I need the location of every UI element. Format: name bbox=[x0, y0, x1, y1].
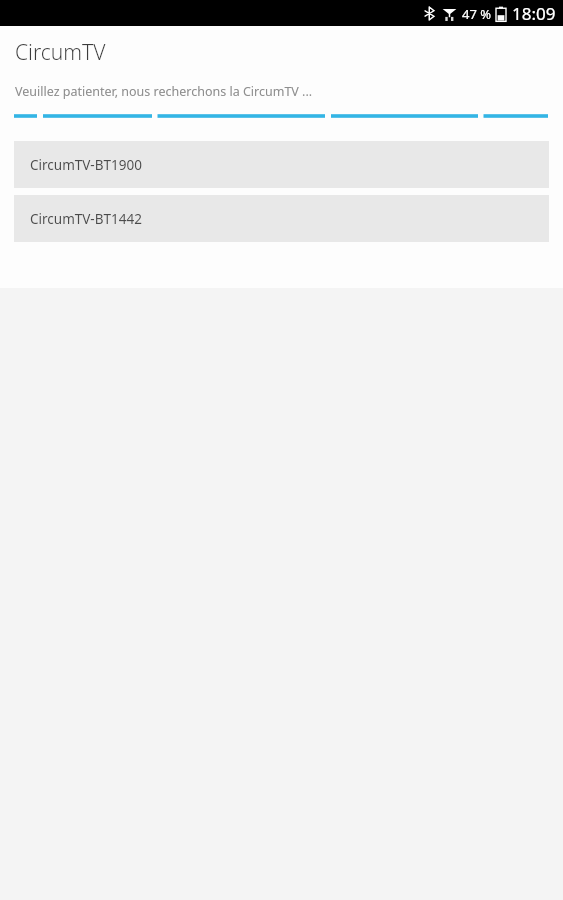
other: Bluetooth bbox=[423, 5, 436, 22]
staticText: Veuillez patienter, nous recherchons la … bbox=[15, 83, 313, 100]
button[interactable]: CircumTV-BT1442 bbox=[14, 195, 549, 242]
staticText: CircumTV-BT1900 bbox=[30, 156, 142, 174]
staticText: 18:09 bbox=[512, 2, 556, 25]
staticText: CircumTV bbox=[15, 38, 106, 67]
other: Battery bbox=[496, 6, 506, 22]
staticText: 47 % bbox=[462, 5, 492, 23]
staticText: CircumTV-BT1442 bbox=[30, 210, 142, 228]
other: Wi-Fi bbox=[442, 5, 457, 22]
button[interactable]: CircumTV-BT1900 bbox=[14, 141, 549, 188]
